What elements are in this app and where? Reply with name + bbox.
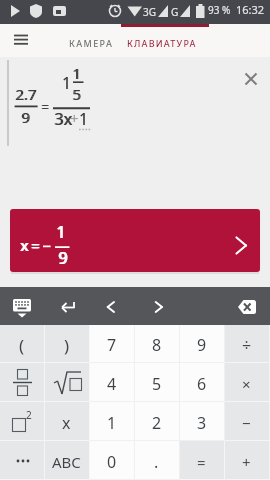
staticText: 1 xyxy=(72,63,81,83)
staticText: 3G xyxy=(143,5,156,19)
staticText: 5 xyxy=(152,373,162,395)
staticText: 1 xyxy=(62,72,72,94)
staticText: 8 xyxy=(152,334,162,356)
staticText: = xyxy=(197,452,206,472)
staticText: + xyxy=(70,108,79,128)
button[interactable]: − xyxy=(225,402,270,441)
staticText: 1 xyxy=(57,221,67,243)
button[interactable]: 8 xyxy=(135,325,180,363)
staticText: 9 xyxy=(58,247,68,269)
staticText: ABC xyxy=(52,452,81,472)
staticText: x xyxy=(20,235,28,255)
button[interactable]: 4 xyxy=(90,363,135,402)
staticText: 7 xyxy=(107,334,117,356)
staticText: 0 xyxy=(107,451,117,473)
button[interactable]: 7 xyxy=(90,325,135,363)
staticText: ÷ xyxy=(242,334,252,356)
staticText: 5 xyxy=(73,84,82,104)
staticText: 1 xyxy=(62,72,72,94)
button[interactable]: ( xyxy=(0,325,45,363)
staticText: 93 % xyxy=(208,3,231,17)
button[interactable]: 5 xyxy=(135,363,180,402)
staticText: ( xyxy=(19,334,25,357)
staticText: 4 xyxy=(107,373,117,395)
staticText: . xyxy=(154,451,159,473)
button[interactable]: 0 xyxy=(90,441,135,480)
staticText: × xyxy=(242,374,251,394)
button[interactable] xyxy=(0,441,45,480)
staticText: x xyxy=(21,235,29,255)
staticText: 6 xyxy=(197,373,207,395)
button[interactable]: ÷ xyxy=(225,325,270,363)
button[interactable]: + xyxy=(225,441,270,480)
staticText: 2.7 xyxy=(16,84,38,104)
staticText: 3 xyxy=(197,412,207,434)
staticText: 9 xyxy=(22,107,31,127)
staticText: = xyxy=(31,236,40,255)
staticText: КАМЕРА xyxy=(69,37,114,49)
button[interactable] xyxy=(45,363,90,402)
staticText: 1 xyxy=(79,108,89,130)
button[interactable]: 2 xyxy=(135,402,180,441)
button[interactable]: = xyxy=(180,441,225,480)
staticText: 5 xyxy=(72,84,81,104)
staticText: 3x xyxy=(55,108,73,130)
button[interactable]: 1 xyxy=(90,402,135,441)
button[interactable]: . xyxy=(135,441,180,480)
button[interactable]: ABC xyxy=(45,441,90,480)
button[interactable]: x xyxy=(45,402,90,441)
button[interactable] xyxy=(216,287,270,325)
staticText: − xyxy=(242,413,251,433)
button[interactable]: 9 xyxy=(180,325,225,363)
button[interactable]: × xyxy=(225,363,270,402)
staticText: 1 xyxy=(79,108,89,130)
staticText: + xyxy=(242,452,251,472)
button[interactable] xyxy=(108,287,162,325)
staticText: 9 xyxy=(197,334,207,356)
staticText: = xyxy=(32,236,41,255)
staticText: 2 xyxy=(152,412,162,434)
button[interactable] xyxy=(0,287,54,325)
staticText: = xyxy=(41,98,49,116)
staticText: 1 xyxy=(56,221,66,243)
staticText: = xyxy=(42,98,50,116)
staticText: 9 xyxy=(21,107,30,127)
staticText: 1 xyxy=(107,412,117,434)
staticText: 2 xyxy=(26,408,32,422)
button[interactable] xyxy=(54,287,108,325)
staticText: 2.7 xyxy=(15,84,37,104)
button[interactable]: КЛАВИАТУРА xyxy=(121,28,209,55)
button[interactable]: 3 xyxy=(180,402,225,441)
staticText: КЛАВИАТУРА xyxy=(127,37,197,49)
staticText: x xyxy=(62,412,71,434)
button[interactable] xyxy=(10,31,32,49)
staticText: 3x xyxy=(54,108,72,130)
button[interactable]: 2 xyxy=(0,402,45,441)
button[interactable]: КАМЕРА xyxy=(62,28,120,55)
staticText: 9 xyxy=(59,247,69,269)
staticText: G xyxy=(171,5,179,19)
button[interactable] xyxy=(0,363,45,402)
button[interactable]: x xyxy=(10,209,260,272)
staticText: 16:32 xyxy=(236,2,265,17)
button[interactable] xyxy=(162,287,216,325)
button[interactable]: 6 xyxy=(180,363,225,402)
staticText: 1 xyxy=(73,63,82,83)
button[interactable]: ) xyxy=(45,325,90,363)
staticText: ) xyxy=(64,334,70,357)
